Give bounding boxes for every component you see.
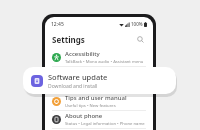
staticText: Software update — [48, 72, 108, 82]
staticText: Tips and user manual — [65, 94, 127, 102]
staticText: 12:45 — [51, 21, 64, 28]
staticText: About phone — [65, 112, 103, 120]
staticText: Status • Legal information • Phone name — [65, 121, 145, 127]
staticText: Useful tips • New features — [65, 103, 116, 109]
staticText: 100% — [131, 21, 143, 27]
button[interactable]: Accessibility — [45, 49, 153, 66]
staticText: TalkBack • Mono audio • Assistant menu — [65, 59, 144, 65]
button[interactable]: Software update — [23, 67, 176, 94]
staticText: Download and install — [48, 83, 98, 90]
button[interactable]: About phone — [45, 111, 153, 128]
button[interactable]: Tips and user manual — [45, 93, 153, 110]
staticText: Settings — [52, 34, 85, 45]
button[interactable]: Search settings — [135, 34, 146, 45]
staticText: Accessibility — [65, 50, 100, 58]
